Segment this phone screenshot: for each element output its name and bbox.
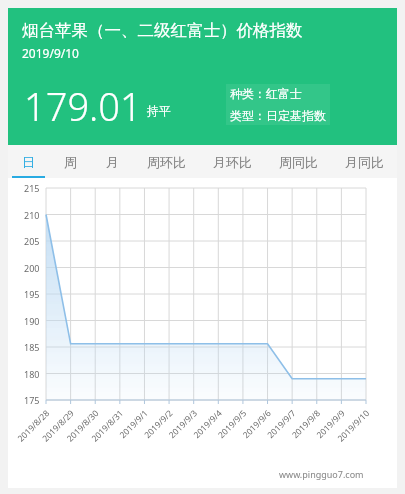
- staticText: 周: [64, 154, 77, 170]
- staticText: 周环比: [147, 154, 186, 170]
- button[interactable]: 周环比: [133, 145, 199, 178]
- button[interactable]: 日: [8, 145, 49, 178]
- staticText: 类型：日定基指数: [230, 108, 326, 123]
- button[interactable]: 周同比: [265, 145, 331, 178]
- staticText: 月: [106, 154, 119, 170]
- staticText: 月同比: [345, 154, 384, 170]
- staticText: 种类：红富士: [230, 86, 302, 101]
- staticText: 179.01: [24, 80, 142, 132]
- staticText: 2019/9/10: [22, 45, 79, 61]
- staticText: 持平: [147, 103, 171, 118]
- button[interactable]: 周: [49, 145, 91, 178]
- staticText: 日: [22, 154, 35, 170]
- button[interactable]: 月同比: [331, 145, 397, 178]
- staticText: 烟台苹果（一、二级红富士）价格指数: [22, 20, 303, 41]
- button[interactable]: 月环比: [199, 145, 265, 178]
- staticText: 周同比: [279, 154, 318, 170]
- staticText: 月环比: [213, 154, 252, 170]
- button[interactable]: 月: [91, 145, 133, 178]
